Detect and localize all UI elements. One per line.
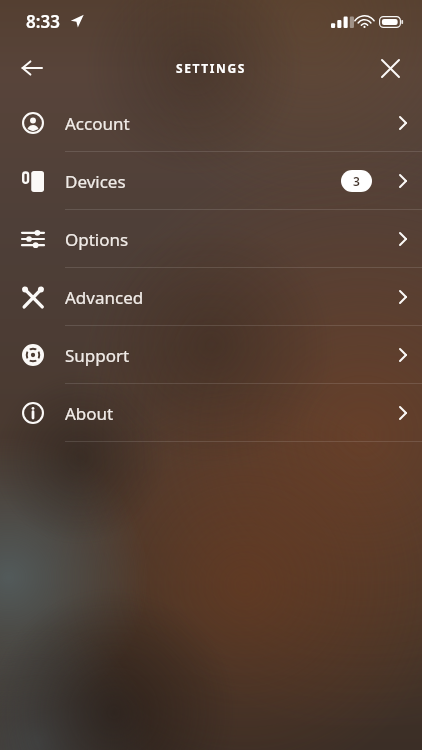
button[interactable]: Close <box>366 44 414 92</box>
button[interactable]: Advanced <box>0 268 422 326</box>
button[interactable]: About <box>0 384 422 442</box>
staticText: 3 <box>353 173 360 189</box>
button[interactable]: Devices <box>0 152 422 210</box>
staticText: About <box>65 402 114 425</box>
button[interactable]: Account <box>0 94 422 152</box>
button[interactable]: Support <box>0 326 422 384</box>
staticText: SETTINGS <box>176 60 246 76</box>
staticText: Account <box>65 112 130 135</box>
staticText: Advanced <box>65 286 144 309</box>
button[interactable]: Options <box>0 210 422 268</box>
staticText: Devices <box>65 170 126 193</box>
staticText: 8:33 <box>26 10 60 33</box>
staticText: Options <box>65 228 129 251</box>
button[interactable]: Back <box>8 44 56 92</box>
staticText: Support <box>65 344 130 367</box>
